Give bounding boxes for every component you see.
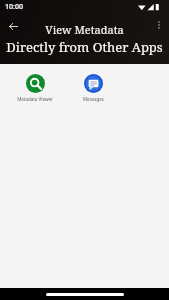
staticText: Messages [83, 96, 104, 102]
button[interactable]: Back [3, 16, 23, 36]
button[interactable]: More options [150, 16, 168, 34]
staticText: View Metadata [45, 22, 124, 37]
staticText: 10:00 [5, 2, 23, 12]
staticText: Directly from Other Apps [6, 38, 163, 56]
staticText: Metadata Viewer [17, 96, 53, 102]
button[interactable]: Messages [66, 70, 120, 106]
button[interactable]: Metadata Viewer [8, 70, 62, 106]
